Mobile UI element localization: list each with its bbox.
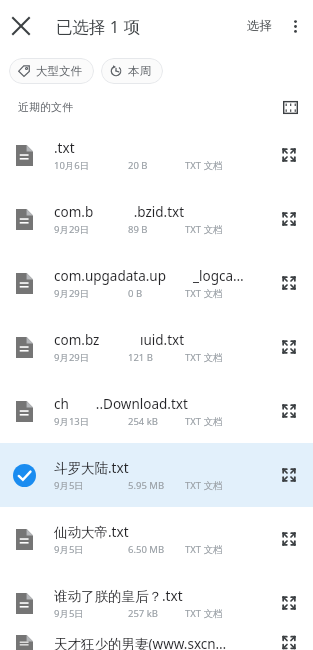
button[interactable]: ch ..Download.txt [0,379,313,443]
staticText: 大型文件 [36,64,82,78]
button[interactable]: Expand 谁动了朕的皇后？.txt [271,585,307,621]
staticText: TXT 文档 [185,543,223,556]
staticText: 谁动了朕的皇后？.txt [54,587,183,605]
staticText: 选择 [247,18,272,34]
button[interactable]: .txt [0,123,313,187]
staticText: TXT 文档 [185,415,223,428]
staticText: 254 kB [128,415,159,428]
staticText: .txt [54,139,75,157]
button[interactable]: 天才狂少的男妻(www.sxcn… [0,635,313,650]
button[interactable]: Expand .txt [271,137,307,173]
button[interactable]: Expand 斗罗大陆.txt [271,457,307,493]
staticText: 9月5日 [54,543,84,556]
staticText: 9月5日 [54,607,84,620]
staticText: TXT 文档 [185,351,223,364]
button[interactable]: 仙动大帝.txt [0,507,313,571]
button[interactable]: com.upgadata.up _logca… [0,251,313,315]
button[interactable]: Close selection [2,7,40,45]
staticText: TXT 文档 [185,223,223,236]
staticText: com.bz ıuid.txt [54,331,185,349]
staticText: 近期的文件 [18,100,73,114]
staticText: 9月29日 [54,287,90,300]
staticText: 9月13日 [54,415,90,428]
staticText: 9月5日 [54,479,84,492]
button[interactable]: Expand com.upgadata.up _logca… [271,265,307,301]
staticText: TXT 文档 [185,607,223,620]
staticText: 121 B [128,351,153,364]
button[interactable]: com.bz ıuid.txt [0,315,313,379]
staticText: 9月29日 [54,223,90,236]
staticText: 20 B [128,159,148,172]
staticText: 10月6日 [54,159,90,172]
button[interactable]: Expand com.bz ıuid.txt [271,329,307,365]
button[interactable]: 大型文件 [9,58,94,84]
button[interactable]: 本周 [101,58,163,84]
staticText: 已选择 1 项 [56,15,141,38]
staticText: 5.95 MB [128,479,165,492]
staticText: 257 kB [128,607,159,620]
button[interactable]: com.b .bzid.txt [0,187,313,251]
button[interactable]: Expand 天才狂少的男妻(www.sxcn… [271,635,307,650]
staticText: 本周 [128,64,151,78]
staticText: 9月29日 [54,351,90,364]
staticText: 89 B [128,223,148,236]
staticText: com.upgadata.up _logca… [54,267,244,285]
button[interactable]: 选择 [242,12,277,40]
button[interactable]: 谁动了朕的皇后？.txt [0,571,313,635]
staticText: 0 B [128,287,143,300]
button[interactable]: Switch to grid view [275,92,305,122]
button[interactable]: Expand com.b .bzid.txt [271,201,307,237]
staticText: 斗罗大陆.txt [54,459,129,477]
staticText: TXT 文档 [185,287,223,300]
button[interactable]: 斗罗大陆.txt [0,443,313,507]
staticText: TXT 文档 [185,159,223,172]
staticText: TXT 文档 [185,479,223,492]
button[interactable]: Expand 仙动大帝.txt [271,521,307,557]
staticText: 天才狂少的男妻(www.sxcn… [54,635,227,650]
staticText: 6.50 MB [128,543,165,556]
button[interactable]: Expand ch ..Download.txt [271,393,307,429]
button[interactable]: More options [277,8,313,44]
staticText: ch ..Download.txt [54,395,188,413]
staticText: com.b .bzid.txt [54,203,185,221]
staticText: 仙动大帝.txt [54,523,129,541]
